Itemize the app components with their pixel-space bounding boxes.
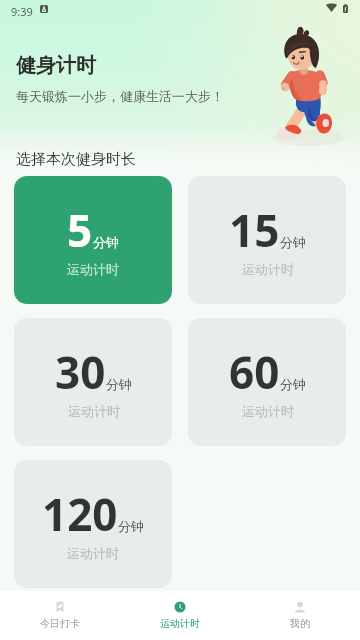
staticText: 分钟: [280, 234, 306, 250]
staticText: 健身计时: [16, 53, 96, 78]
button[interactable]: 5: [14, 176, 172, 304]
button[interactable]: 60: [188, 318, 346, 446]
staticText: 运动计时: [67, 261, 119, 277]
button[interactable]: 我的: [240, 591, 360, 640]
staticText: 分钟: [118, 518, 144, 534]
staticText: 9:39: [11, 4, 33, 19]
button[interactable]: 15: [188, 176, 346, 304]
staticText: 运动计时: [242, 403, 294, 419]
button[interactable]: 120: [14, 460, 172, 588]
staticText: 120: [42, 484, 118, 544]
staticText: 运动计时: [160, 617, 200, 630]
staticText: 分钟: [93, 234, 119, 250]
staticText: 今日打卡: [40, 617, 80, 630]
button[interactable]: 今日打卡: [0, 591, 120, 640]
staticText: 5: [67, 200, 93, 260]
staticText: 每天锻炼一小步，健康生活一大步！: [16, 88, 224, 104]
staticText: 选择本次健身时长: [16, 150, 136, 169]
staticText: 运动计时: [68, 403, 120, 419]
button[interactable]: 运动计时: [120, 591, 240, 640]
staticText: 我的: [290, 617, 310, 630]
staticText: 分钟: [280, 376, 306, 392]
button[interactable]: 30: [14, 318, 172, 446]
staticText: 60: [229, 342, 280, 402]
staticText: 分钟: [106, 376, 132, 392]
staticText: 运动计时: [67, 545, 119, 561]
staticText: 30: [55, 342, 106, 402]
staticText: 15: [229, 200, 280, 260]
staticText: 运动计时: [242, 261, 294, 277]
